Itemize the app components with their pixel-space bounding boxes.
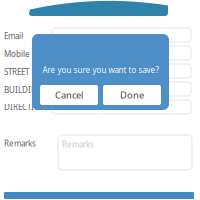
staticText: Remarks — [4, 138, 36, 149]
staticText: Remarks — [62, 139, 94, 150]
staticText: Are you sure you want to save? — [42, 65, 158, 75]
button[interactable]: Cancel — [40, 85, 98, 105]
staticText: DIRECTION — [4, 101, 46, 112]
button[interactable]: Done — [103, 85, 161, 105]
staticText: Email — [4, 30, 23, 41]
staticText: Done — [120, 89, 144, 101]
staticText: STREET — [4, 66, 29, 77]
staticText: Mobile — [4, 48, 30, 59]
staticText: Cancel — [55, 89, 83, 101]
staticText: BUILDING — [4, 84, 43, 95]
